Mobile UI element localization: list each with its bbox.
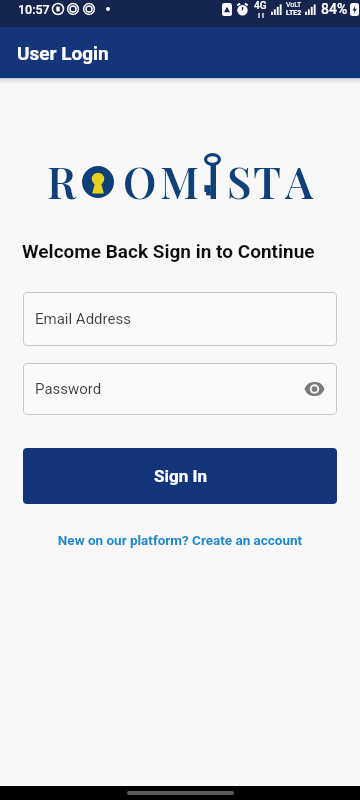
button[interactable]: New on our platform? Create an account	[0, 532, 360, 548]
button[interactable]: Password	[23, 363, 337, 415]
staticText: VoLT	[286, 1, 302, 9]
button[interactable]: Sign In	[23, 448, 337, 504]
staticText: 10:57	[18, 2, 50, 17]
staticText: A	[285, 152, 314, 200]
staticText: 4G	[254, 0, 267, 12]
button[interactable]: Email Address	[23, 292, 337, 346]
staticText: Password	[35, 380, 102, 398]
staticText: 84%	[321, 1, 348, 17]
staticText: T	[253, 152, 282, 200]
button[interactable]: Show password	[301, 376, 327, 402]
staticText: S	[227, 152, 252, 200]
staticText: M	[160, 152, 200, 200]
staticText: Sign In	[154, 466, 207, 486]
staticText: R	[47, 152, 77, 200]
staticText: Welcome Back Sign in to Continue	[22, 240, 315, 262]
staticText: O	[123, 152, 157, 200]
staticText: User Login	[17, 42, 109, 64]
staticText: LTE2	[286, 9, 302, 17]
staticText: Email Address	[35, 310, 131, 328]
